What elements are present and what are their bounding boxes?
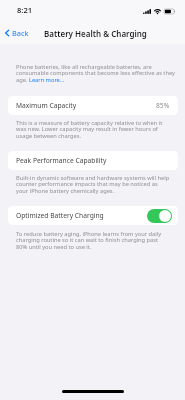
staticText: 8:21 — [17, 5, 33, 15]
button[interactable]: Phone batteries, like all rechargeable b… — [16, 63, 177, 84]
staticText: 85% — [156, 101, 170, 110]
staticText: Built-in dynamic software and hardware s… — [16, 174, 170, 195]
button[interactable]: Peak Performance Capability — [8, 151, 178, 170]
staticText: Back — [12, 28, 29, 38]
staticText: This is a measure of battery capacity re… — [16, 119, 163, 140]
staticText: Battery Health & Charging — [44, 28, 147, 39]
staticText: Optimized Battery Charging — [16, 211, 104, 220]
button[interactable]: Optimized Battery Charging toggle — [147, 209, 172, 223]
button[interactable]: Optimized Battery Charging — [8, 206, 178, 225]
staticText: To reduce battery aging, iPhone learns f… — [16, 230, 162, 251]
button[interactable]: Back — [0, 25, 35, 41]
staticText: Peak Performance Capability — [16, 156, 107, 165]
button[interactable]: Maximum Capacity — [8, 96, 178, 115]
staticText: Phone batteries, like all rechargeable b… — [16, 63, 175, 84]
staticText: Maximum Capacity — [16, 101, 77, 110]
